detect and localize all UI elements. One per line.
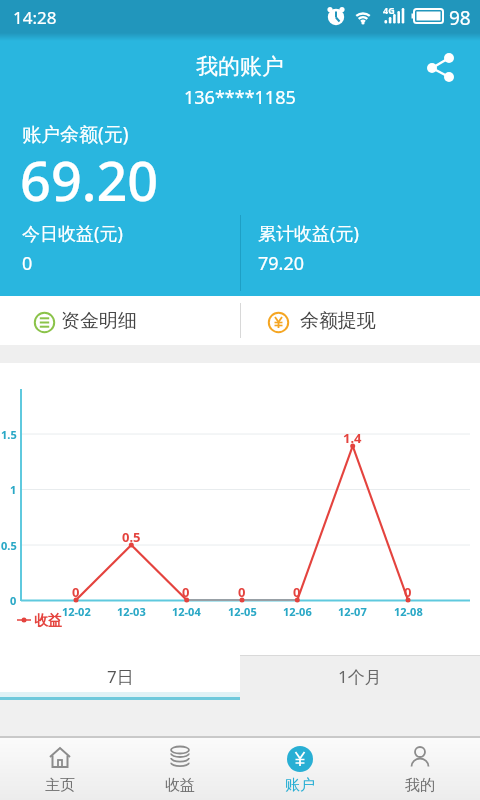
staticText: 0	[238, 583, 246, 601]
button[interactable]	[420, 48, 460, 88]
button[interactable]: 资金明细	[0, 296, 240, 345]
button[interactable]: 我的	[360, 738, 480, 800]
button[interactable]: 收益	[120, 738, 240, 800]
staticText: 余额提现	[300, 309, 376, 333]
staticText: 0	[182, 583, 190, 601]
staticText: 收益	[34, 612, 62, 630]
staticText: 12-07	[338, 604, 367, 619]
button[interactable]: 账户	[240, 738, 360, 800]
staticText: 12-08	[394, 604, 423, 619]
staticText: 我的	[360, 776, 480, 795]
staticText: 0	[404, 583, 412, 601]
staticText: 12-04	[172, 604, 201, 619]
staticText: 账户	[240, 776, 360, 795]
staticText: 0.5	[122, 528, 141, 546]
staticText: 12-05	[228, 604, 257, 619]
staticText: 主页	[0, 776, 120, 795]
staticText: 12-06	[283, 604, 312, 619]
staticText: 4G	[383, 4, 395, 16]
staticText: 12-02	[62, 604, 91, 619]
button[interactable]: 主页	[0, 738, 120, 800]
staticText: 1个月	[338, 665, 382, 688]
staticText: 79.20	[258, 251, 305, 276]
staticText: 收益	[120, 776, 240, 795]
staticText: 1.4	[343, 429, 362, 447]
staticText: 1	[10, 482, 17, 497]
staticText: 我的账户	[196, 53, 284, 81]
button[interactable]	[0, 655, 240, 700]
staticText: 0	[293, 583, 301, 601]
staticText: 12-03	[117, 604, 146, 619]
staticText: 1.5	[1, 427, 17, 442]
staticText: 累计收益(元)	[258, 221, 359, 246]
staticText: 0	[10, 593, 17, 608]
staticText: 今日收益(元)	[22, 221, 123, 246]
staticText: 0	[72, 583, 80, 601]
button[interactable]: 余额提现	[240, 296, 480, 345]
staticText: 0.5	[1, 538, 17, 553]
staticText: 14:28	[13, 6, 57, 29]
staticText: 资金明细	[61, 309, 137, 333]
button[interactable]	[240, 655, 480, 700]
staticText: 7日	[107, 665, 134, 688]
staticText: 98	[449, 5, 471, 31]
staticText: 136****1185	[184, 85, 296, 110]
staticText: 账户余额(元)	[22, 121, 129, 147]
staticText: 0	[22, 251, 33, 276]
staticText: 69.20	[20, 143, 159, 217]
